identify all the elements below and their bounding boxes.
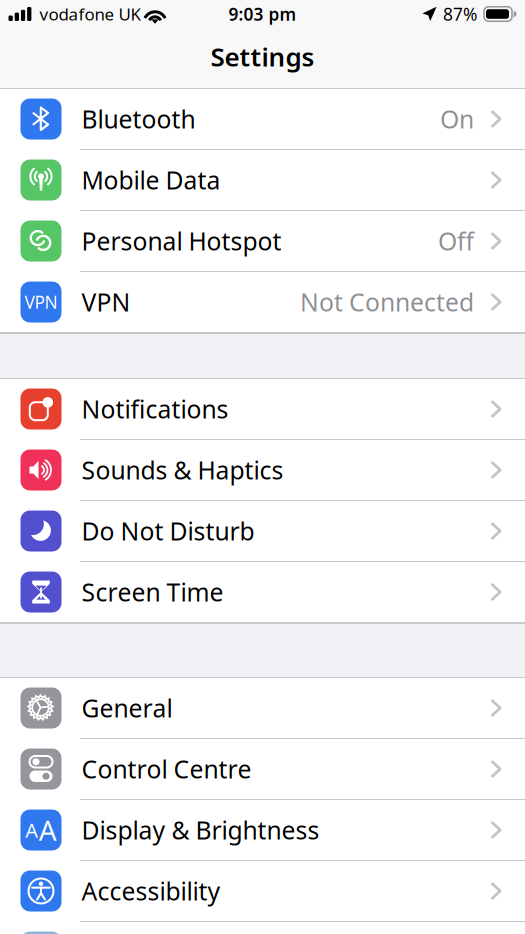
button[interactable]: General [0, 678, 525, 739]
staticText: General [81, 691, 172, 725]
button[interactable]: Accessibility [0, 861, 525, 922]
staticText: Not Connected [300, 285, 474, 319]
button[interactable]: Screen Time [0, 562, 525, 623]
button[interactable]: Wallpaper [0, 922, 525, 934]
staticText: 9:03 pm [228, 2, 296, 26]
staticText: Mobile Data [81, 163, 220, 197]
staticText: Off [438, 224, 474, 258]
staticText: Notifications [81, 392, 228, 426]
staticText: 87% [443, 2, 477, 26]
staticText: A [39, 811, 57, 849]
staticText: Accessibility [81, 874, 220, 908]
staticText: Sounds & Haptics [81, 453, 283, 487]
button[interactable]: Do Not Disturb [0, 501, 525, 562]
staticText: Settings [210, 39, 314, 74]
button[interactable]: VPN [0, 272, 525, 333]
button[interactable]: Control Centre [0, 739, 525, 800]
button[interactable]: Personal Hotspot [0, 211, 525, 272]
staticText: A [25, 816, 38, 844]
staticText: Bluetooth [81, 102, 195, 136]
button[interactable]: Notifications [0, 379, 525, 440]
staticText: Screen Time [81, 575, 223, 609]
button[interactable]: Bluetooth [0, 89, 525, 150]
staticText: Personal Hotspot [81, 224, 281, 258]
button[interactable]: Sounds & Haptics [0, 440, 525, 501]
button[interactable]: Mobile Data [0, 150, 525, 211]
staticText: Control Centre [81, 752, 251, 786]
staticText: vodafone UK [39, 2, 140, 26]
staticText: On [440, 102, 474, 136]
button[interactable]: A [0, 800, 525, 861]
staticText: Display & Brightness [81, 813, 319, 847]
staticText: VPN [24, 290, 57, 314]
staticText: Do Not Disturb [81, 514, 254, 548]
staticText: VPN [81, 285, 130, 319]
